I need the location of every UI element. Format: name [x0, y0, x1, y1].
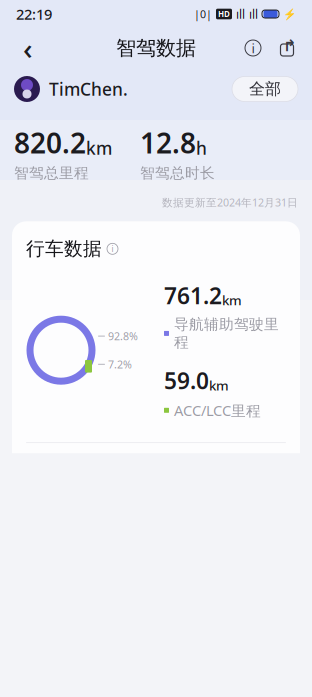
staticText: 92.8% — [108, 329, 138, 343]
staticText: ⚡ — [283, 8, 296, 20]
staticText: h — [196, 136, 207, 159]
staticText: 导航辅助驾驶里程 — [174, 315, 279, 351]
staticText: ‹ — [23, 28, 33, 67]
staticText: 820.2 — [14, 124, 86, 161]
staticText: 761.2 — [164, 280, 222, 310]
staticText: km — [209, 376, 229, 394]
staticText: ıll — [249, 6, 258, 22]
button[interactable]: Back — [8, 28, 48, 68]
staticText: 智驾总时长 — [140, 164, 215, 182]
staticText: HD — [218, 9, 230, 19]
staticText: 智驾总里程 — [14, 164, 89, 182]
staticText: km — [86, 136, 112, 159]
staticText: 全部 — [249, 79, 281, 99]
staticText: km — [222, 291, 242, 309]
staticText: 7.2% — [108, 357, 132, 371]
staticText: ↱ — [283, 36, 296, 55]
staticText: 59.0 — [164, 365, 209, 395]
staticText: ACC/LCC里程 — [174, 400, 261, 420]
staticText: 12.8 — [140, 124, 196, 161]
staticText: 22:19 — [16, 4, 52, 24]
button[interactable]: Information — [236, 28, 270, 68]
staticText: |0| — [194, 7, 212, 21]
staticText: i — [251, 39, 254, 57]
staticText: i — [111, 243, 113, 254]
staticText: 行车数据 — [26, 237, 102, 260]
button[interactable]: Share — [270, 28, 304, 68]
staticText: 智驾数据 — [116, 36, 196, 60]
staticText: 数据更新至2024年12月31日 — [162, 195, 298, 209]
staticText: ıll — [236, 6, 245, 22]
staticText: TimChen. — [49, 77, 128, 100]
button[interactable]: 全部 — [232, 76, 298, 101]
